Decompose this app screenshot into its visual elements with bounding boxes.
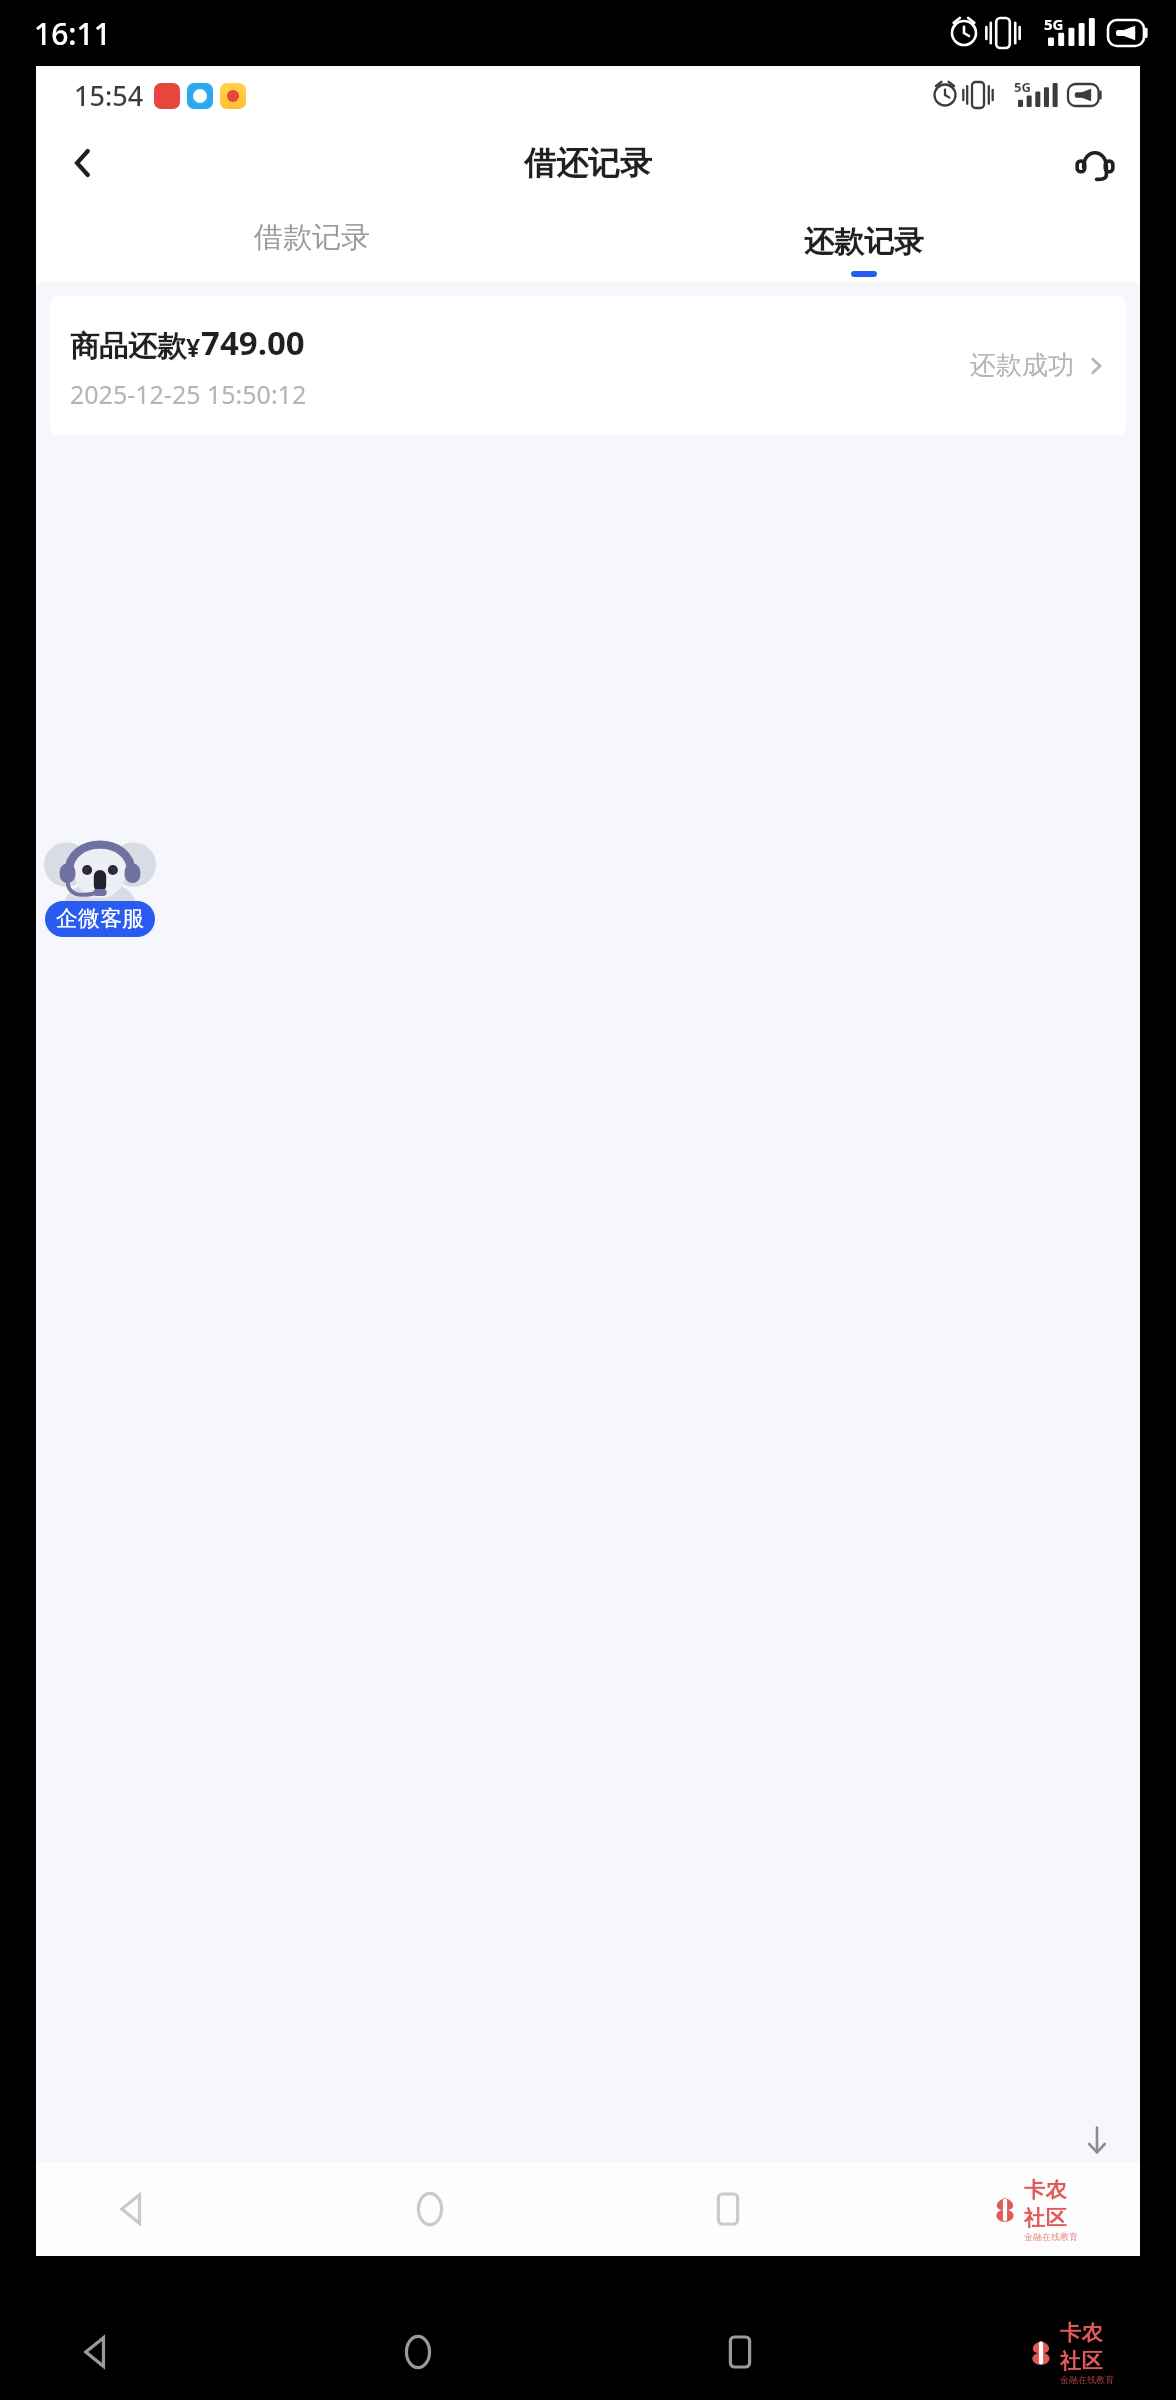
- staticText: 15:54: [74, 77, 144, 114]
- staticText: 还款记录: [804, 223, 924, 261]
- staticText: 金融在线教育: [1024, 2231, 1078, 2242]
- button[interactable]: Home: [382, 2316, 454, 2388]
- staticText: 5G: [1044, 14, 1064, 34]
- button[interactable]: Recent apps: [704, 2316, 776, 2388]
- staticText: ¥: [186, 330, 201, 364]
- staticText: 借款记录: [254, 219, 370, 256]
- staticText: 商品还款: [70, 328, 186, 365]
- staticText: 2025-12-25 15:50:12: [70, 377, 307, 411]
- button[interactable]: 借款记录: [36, 202, 588, 282]
- button[interactable]: Back: [50, 130, 116, 196]
- staticText: 还款成功: [970, 349, 1074, 382]
- button[interactable]: 商品还款: [50, 296, 1126, 435]
- staticText: 5G: [1014, 78, 1031, 96]
- button[interactable]: 企微客服 customer service: [44, 829, 156, 937]
- button[interactable]: Home: [394, 2173, 466, 2245]
- staticText: 卡农社区: [1024, 2177, 1080, 2231]
- staticText: 金融在线教育: [1060, 2374, 1114, 2385]
- button[interactable]: Back: [96, 2173, 168, 2245]
- staticText: 卡农社区: [1060, 2320, 1116, 2374]
- button[interactable]: Customer service: [1062, 130, 1128, 196]
- button[interactable]: 还款记录: [588, 202, 1140, 282]
- button[interactable]: Recent apps: [692, 2173, 764, 2245]
- staticText: 借还记录: [524, 143, 652, 183]
- staticText: 企微客服: [56, 905, 144, 933]
- staticText: 749.00: [201, 320, 305, 365]
- staticText: 16:11: [34, 13, 111, 54]
- button[interactable]: Back: [60, 2316, 132, 2388]
